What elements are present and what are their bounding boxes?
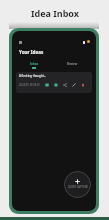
staticText: A fleeting thought... [19,74,47,78]
staticText: 2024-05-18 09:41 [19,83,40,87]
button[interactable]: Delete [81,83,85,87]
button[interactable]: A fleeting thought... [16,72,92,93]
button[interactable]: Profile [87,40,90,43]
staticText: Review [67,62,78,66]
staticText: Idea Inbox [31,7,79,19]
button[interactable]: Search [83,41,85,44]
button[interactable]: Quick capture [64,171,91,198]
staticText: QUICK CAPTURE [68,185,88,189]
button[interactable]: Edit [72,83,76,87]
button[interactable]: Share [63,83,67,87]
staticText: Inbox [30,62,39,66]
staticText: Your Ideas [19,49,44,55]
button[interactable]: Review [53,62,91,69]
button[interactable]: Done [54,83,58,87]
button[interactable]: Archive [45,83,49,87]
button[interactable]: Inbox [15,62,53,69]
